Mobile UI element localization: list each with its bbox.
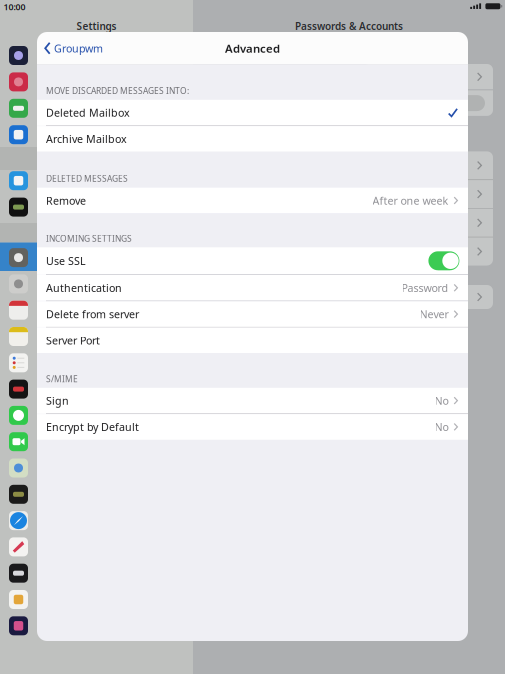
staticText: Sign xyxy=(46,393,69,408)
button[interactable]: Deleted Mailbox xyxy=(37,100,468,125)
staticText: No xyxy=(435,393,449,408)
staticText: Remove xyxy=(46,193,86,208)
staticText: Encrypt by Default xyxy=(46,420,139,434)
staticText: Delete from server xyxy=(46,307,139,321)
button[interactable]: Encrypt by Default xyxy=(37,414,468,440)
staticText: Use SSL xyxy=(46,253,86,268)
button[interactable]: Use SSL xyxy=(37,247,468,274)
button[interactable]: Sign xyxy=(37,388,468,413)
staticText: Server Port xyxy=(46,333,100,348)
staticText: No xyxy=(435,420,449,434)
staticText: S/MIME xyxy=(46,373,78,385)
staticText: Authentication xyxy=(46,280,122,295)
button[interactable]: Authentication xyxy=(37,275,468,301)
button[interactable]: Server Port xyxy=(37,328,468,353)
staticText: After one week xyxy=(373,193,449,208)
button[interactable]: Delete from server xyxy=(37,301,468,327)
staticText: Never xyxy=(420,307,449,321)
staticText: Settings xyxy=(76,19,116,33)
staticText: Groupwm xyxy=(54,41,103,55)
staticText: DELETED MESSAGES xyxy=(46,173,128,184)
staticText: 10:00 xyxy=(4,1,26,13)
button[interactable]: Groupwm xyxy=(37,32,111,64)
staticText: MOVE DISCARDED MESSAGES INTO: xyxy=(46,85,189,96)
staticText: Password xyxy=(402,280,449,295)
staticText: Advanced xyxy=(225,40,280,56)
staticText: INCOMING SETTINGS xyxy=(46,233,132,244)
staticText: Deleted Mailbox xyxy=(46,105,130,120)
button[interactable]: Archive Mailbox xyxy=(37,126,468,152)
staticText: Archive Mailbox xyxy=(46,132,127,146)
button[interactable]: Remove xyxy=(37,188,468,213)
staticText: Passwords & Accounts xyxy=(295,19,403,33)
